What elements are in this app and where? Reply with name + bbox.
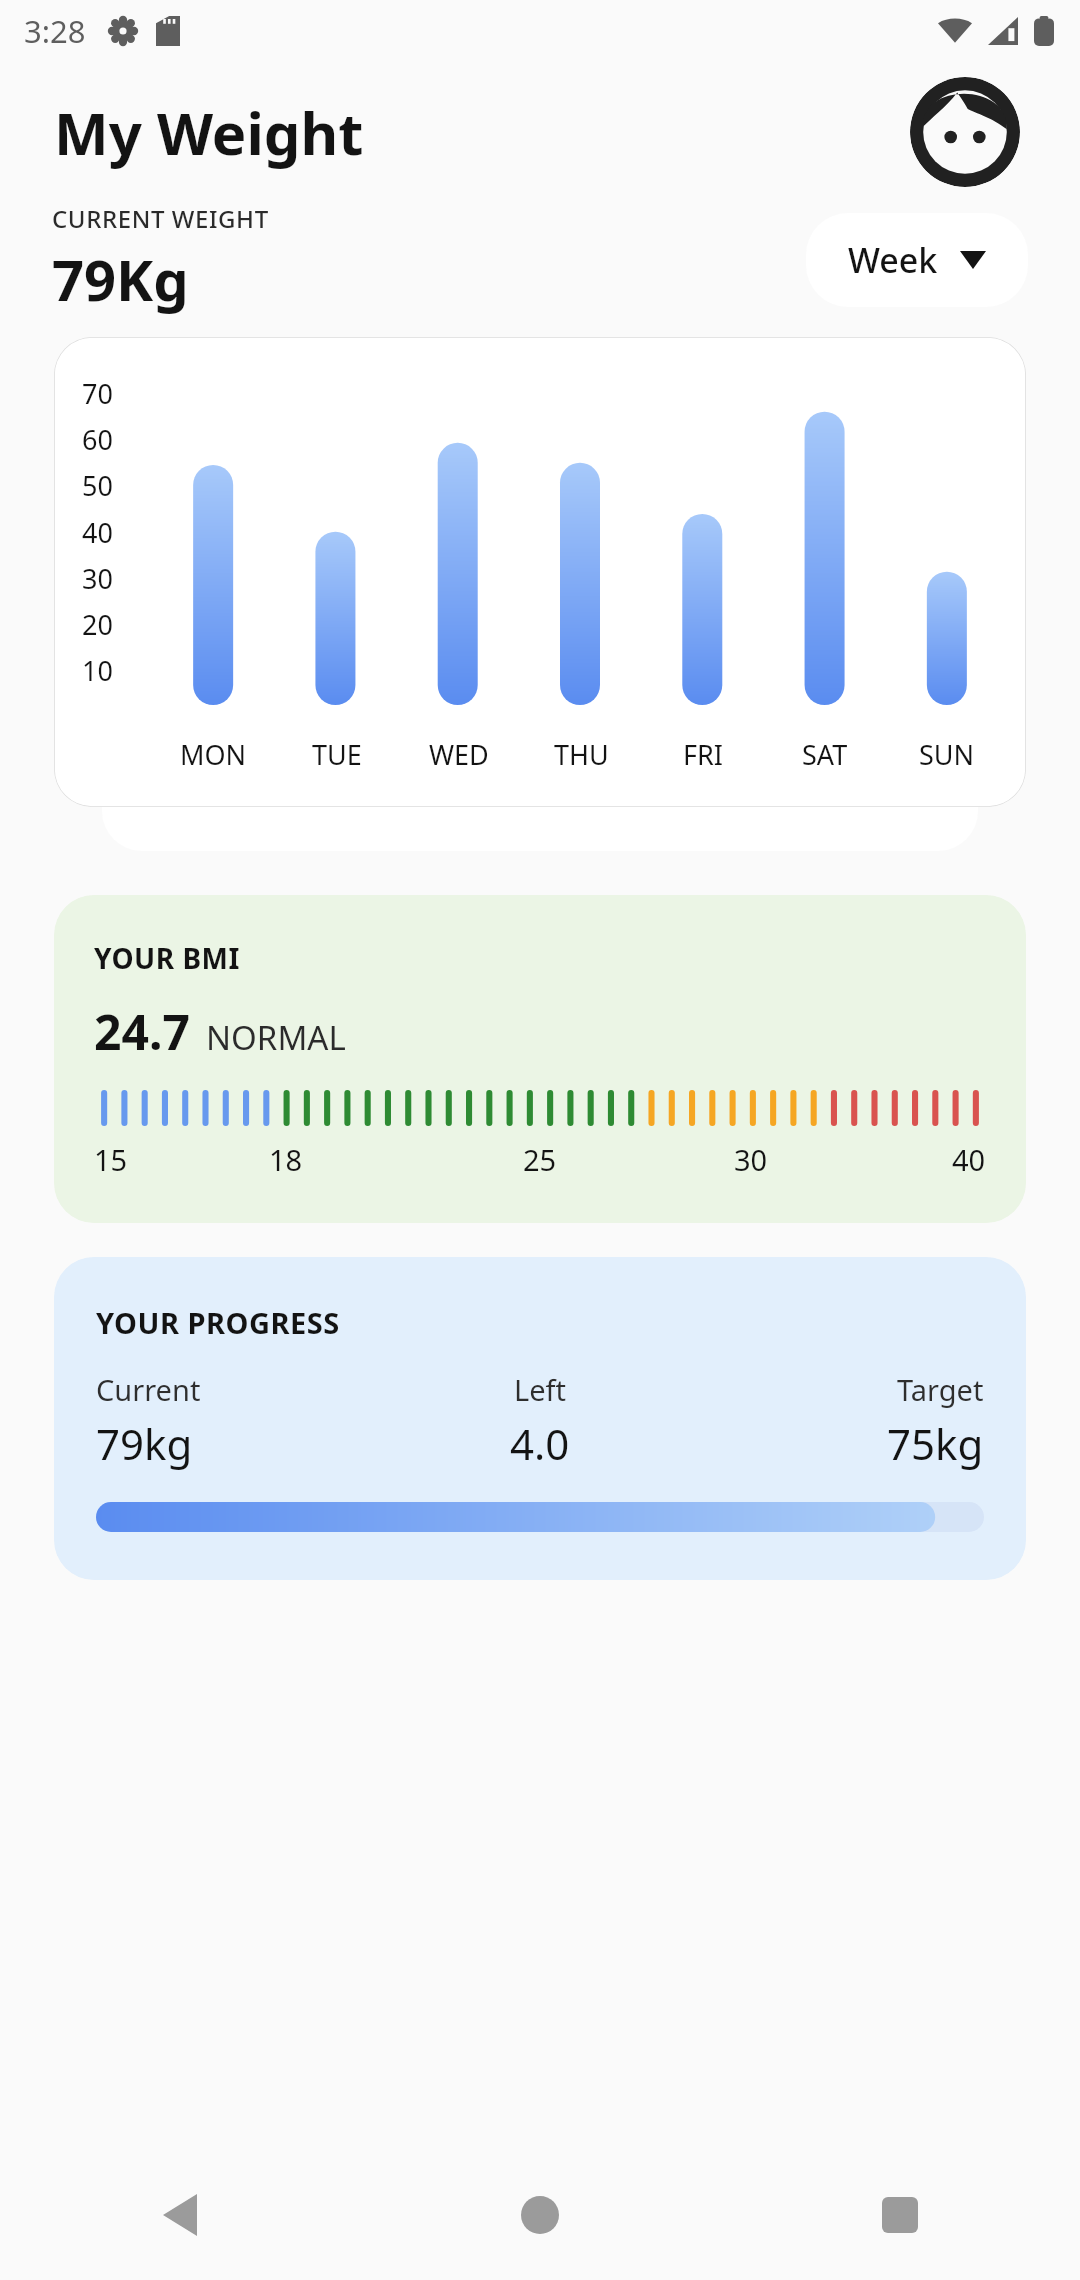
staticText: 30	[734, 1140, 768, 1179]
staticText: 50	[82, 467, 113, 504]
staticText: 79kg	[96, 1415, 193, 1472]
staticText: 40	[82, 514, 113, 551]
staticText: NORMAL	[206, 1015, 346, 1060]
staticText: Left	[514, 1370, 566, 1409]
staticText: 79Kg	[52, 241, 189, 317]
staticText: 25	[523, 1140, 557, 1179]
staticText: 10	[82, 652, 113, 689]
staticText: SUN	[919, 736, 975, 773]
staticText: 30	[82, 560, 113, 597]
staticText: Week	[848, 237, 938, 283]
staticText: THU	[554, 736, 609, 773]
staticText: FRI	[683, 736, 723, 773]
staticText: MON	[180, 736, 247, 773]
staticText: 3:28	[24, 10, 86, 52]
staticText: 18	[269, 1140, 303, 1179]
staticText: CURRENT WEIGHT	[52, 202, 269, 235]
staticText: 15	[94, 1140, 128, 1179]
button[interactable]: Back	[0, 2150, 360, 2280]
staticText: YOUR PROGRESS	[96, 1303, 340, 1342]
button[interactable]: Profile	[910, 77, 1020, 187]
staticText: TUE	[312, 736, 362, 773]
staticText: 70	[82, 375, 113, 412]
staticText: WED	[429, 736, 489, 773]
staticText: 24.7	[94, 999, 190, 1064]
button[interactable]: Home	[360, 2150, 720, 2280]
staticText: 4.0	[510, 1415, 570, 1472]
button[interactable]: Recents	[720, 2150, 1080, 2280]
staticText: 75kg	[887, 1415, 984, 1472]
staticText: SAT	[802, 736, 848, 773]
button[interactable]: YOUR PROGRESS	[54, 1257, 1026, 1580]
staticText: 60	[82, 421, 113, 458]
button[interactable]: 70	[54, 337, 1026, 807]
staticText: 40	[952, 1140, 986, 1179]
staticText: Target	[897, 1370, 984, 1409]
button[interactable]: YOUR BMI	[54, 895, 1026, 1223]
staticText: 20	[82, 606, 113, 643]
staticText: YOUR BMI	[94, 939, 240, 977]
button[interactable]: Week	[806, 213, 1028, 307]
staticText: Current	[96, 1370, 201, 1409]
staticText: My Weight	[54, 93, 364, 172]
